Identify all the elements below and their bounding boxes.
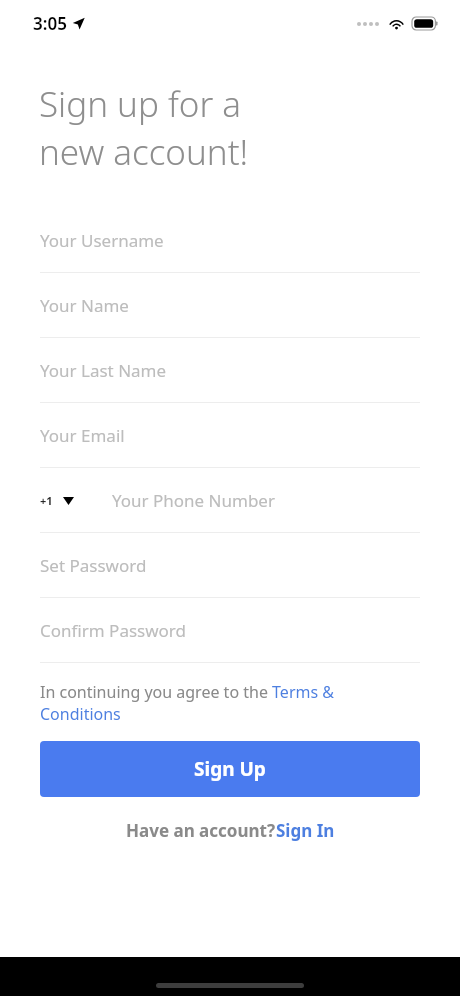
staticText: Confirm Password <box>40 619 186 642</box>
staticText: Your Email <box>40 424 125 447</box>
staticText: Sign up for a <box>39 80 242 128</box>
button[interactable]: Set Password <box>0 533 460 598</box>
staticText: Your Phone Number <box>112 489 275 512</box>
button[interactable]: Your Name <box>0 273 460 338</box>
staticText: Your Last Name <box>40 359 167 382</box>
button[interactable]: Your Username <box>0 208 460 273</box>
staticText: new account! <box>39 128 249 176</box>
staticText: +1 <box>40 493 53 508</box>
button[interactable]: Your Email <box>0 403 460 468</box>
staticText: In continuing you agree to the Terms & C… <box>40 681 390 725</box>
staticText: Your Name <box>40 294 129 317</box>
button[interactable]: Your Phone Number <box>112 468 420 532</box>
staticText: 3:05 <box>33 12 67 35</box>
staticText: Your Username <box>40 229 164 252</box>
button[interactable]: Confirm Password <box>0 598 460 663</box>
button[interactable]: Sign Up <box>40 741 420 797</box>
staticText: Set Password <box>40 554 147 577</box>
staticText: Have an account? <box>126 819 276 842</box>
button[interactable]: Select country code <box>40 493 74 508</box>
staticText: Sign In <box>276 819 335 842</box>
button[interactable]: Have an account? <box>126 819 335 842</box>
staticText: Sign Up <box>194 756 266 782</box>
button[interactable]: Your Last Name <box>0 338 460 403</box>
